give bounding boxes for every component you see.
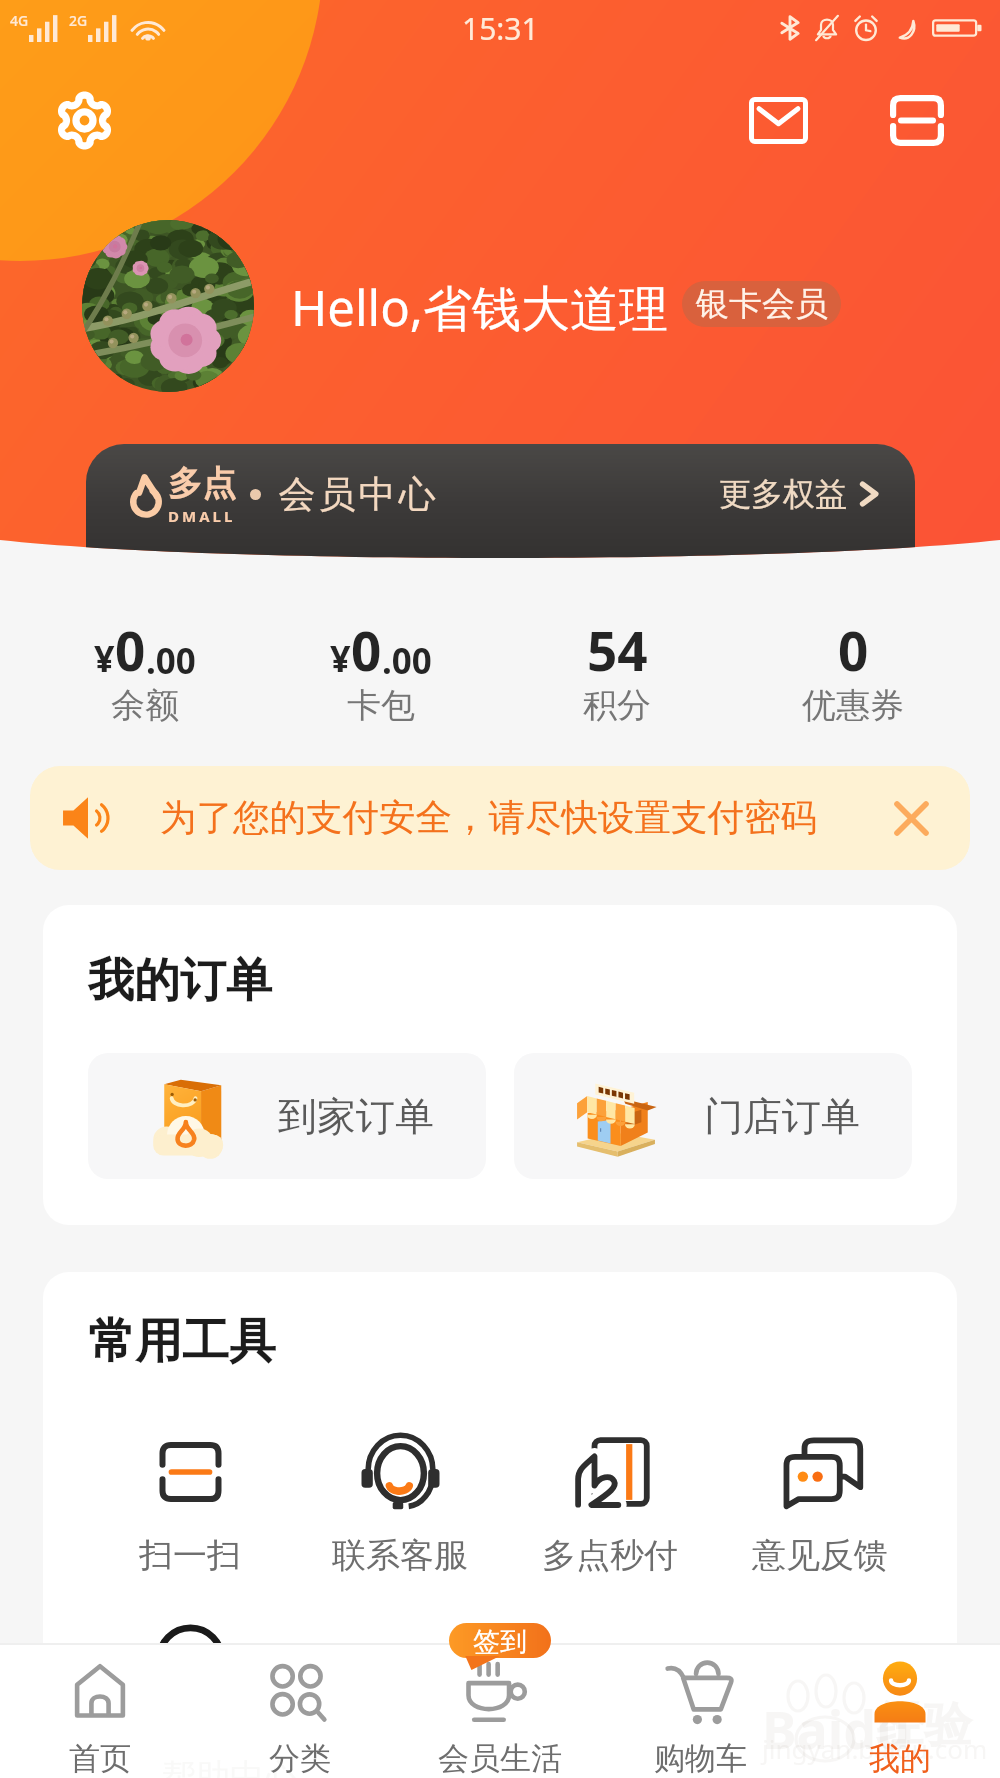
button[interactable]: 54 <box>499 601 735 741</box>
button[interactable]: 我的 <box>800 1643 1000 1778</box>
staticText: 15:31 <box>462 8 539 49</box>
staticText: 更多权益 <box>719 474 847 514</box>
staticText: ¥ <box>94 634 115 683</box>
staticText: 会员中心 <box>277 471 437 518</box>
button[interactable]: ¥ <box>263 601 499 741</box>
staticText: 签到 <box>473 1625 527 1659</box>
staticText: 购物车 <box>654 1739 747 1778</box>
staticText: 经验 <box>876 1695 972 1755</box>
button[interactable]: 银卡会员 <box>682 281 841 327</box>
button[interactable]: ¥ <box>27 601 263 741</box>
staticText: .00 <box>382 637 432 685</box>
button[interactable]: 购物车 <box>600 1643 800 1778</box>
button[interactable]: 会员生活 <box>400 1643 600 1778</box>
staticText: 会员生活 <box>438 1739 562 1778</box>
staticText: 积分 <box>583 684 651 727</box>
button[interactable]: 签到 <box>449 1623 551 1670</box>
staticText: 4G <box>10 11 29 30</box>
button[interactable]: 为了您的支付安全，请尽快设置支付密码 <box>30 766 970 870</box>
staticText: 为了您的支付安全，请尽快设置支付密码 <box>160 795 817 841</box>
button[interactable]: 多点 <box>86 444 915 544</box>
staticText: 常用工具 <box>88 1312 276 1371</box>
button[interactable]: 联系客服 <box>295 1433 505 1577</box>
staticText: ¥ <box>330 634 351 683</box>
staticText: 联系客服 <box>332 1534 468 1577</box>
staticText: 54 <box>587 614 648 686</box>
staticText: DMALL <box>168 506 236 526</box>
staticText: 我的订单 <box>88 952 272 1010</box>
staticText: 多点秒付 <box>542 1534 678 1577</box>
button[interactable]: 多点秒付 <box>505 1433 715 1577</box>
button[interactable] <box>715 1608 925 1702</box>
staticText: Baidu <box>762 1693 910 1764</box>
button[interactable]: Close notice <box>882 789 940 847</box>
button[interactable]: 到家订单 <box>88 1053 486 1179</box>
staticText: 首页 <box>69 1739 131 1778</box>
staticText: jingyan.baidu.com <box>762 1731 988 1766</box>
button[interactable]: 意见反馈 <box>715 1433 925 1577</box>
staticText: 多点 <box>168 462 236 505</box>
staticText: 0 <box>838 614 869 686</box>
button[interactable]: 门店订单 <box>514 1053 912 1179</box>
button[interactable] <box>505 1608 715 1702</box>
button[interactable]: 分类 <box>200 1643 400 1778</box>
staticText: 0 <box>115 614 146 686</box>
staticText: 扫一扫 <box>139 1534 241 1577</box>
staticText: 分类 <box>269 1739 331 1778</box>
staticText: 2G <box>69 11 88 30</box>
staticText: 帮助中心 <box>162 1755 298 1778</box>
staticText: 优惠券 <box>802 684 904 727</box>
button[interactable]: Avatar <box>82 220 254 392</box>
staticText: 卡包 <box>347 684 415 727</box>
staticText: .00 <box>146 637 196 685</box>
button[interactable]: 扫一扫 <box>85 1433 295 1577</box>
button[interactable]: 0 <box>735 601 971 741</box>
button[interactable] <box>85 1608 295 1702</box>
staticText: Hello,省钱大道理 <box>291 274 669 341</box>
staticText: 门店订单 <box>704 1092 860 1141</box>
staticText: 银卡会员 <box>696 283 828 325</box>
staticText: 0 <box>351 614 382 686</box>
button[interactable]: Settings <box>40 76 128 164</box>
button[interactable]: 首页 <box>0 1643 200 1778</box>
button[interactable]: Scan code <box>873 76 961 164</box>
staticText: 意见反馈 <box>752 1534 888 1577</box>
button[interactable]: Messages <box>734 76 822 164</box>
staticText: 到家订单 <box>278 1092 434 1141</box>
button[interactable] <box>295 1608 505 1702</box>
staticText: 我的 <box>869 1739 931 1778</box>
staticText: 余额 <box>111 684 179 727</box>
